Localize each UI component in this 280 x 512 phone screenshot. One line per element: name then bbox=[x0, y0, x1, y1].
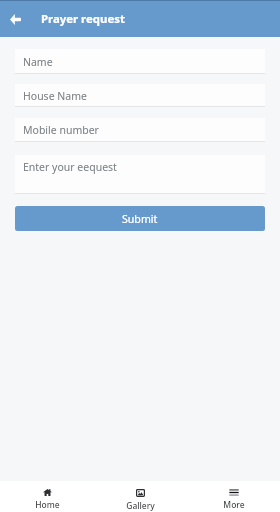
button[interactable]: House Name bbox=[15, 84, 265, 107]
button[interactable]: Home bbox=[0, 481, 94, 512]
staticText: Enter your eequest bbox=[23, 160, 117, 174]
button[interactable]: Gallery bbox=[94, 481, 187, 512]
button[interactable]: More bbox=[187, 481, 280, 512]
staticText: Prayer request bbox=[41, 11, 125, 27]
staticText: Submit bbox=[122, 212, 158, 226]
staticText: Mobile number bbox=[23, 123, 99, 137]
staticText: Gallery bbox=[126, 500, 155, 512]
staticText: Name bbox=[23, 55, 53, 69]
button[interactable]: Enter your eequest bbox=[15, 155, 265, 194]
button[interactable]: Submit bbox=[15, 206, 265, 231]
staticText: More bbox=[223, 499, 245, 511]
button[interactable]: Back bbox=[0, 1, 30, 37]
staticText: House Name bbox=[23, 89, 87, 103]
button[interactable]: Mobile number bbox=[15, 118, 265, 142]
button[interactable]: Name bbox=[15, 49, 265, 74]
staticText: Home bbox=[35, 499, 60, 511]
